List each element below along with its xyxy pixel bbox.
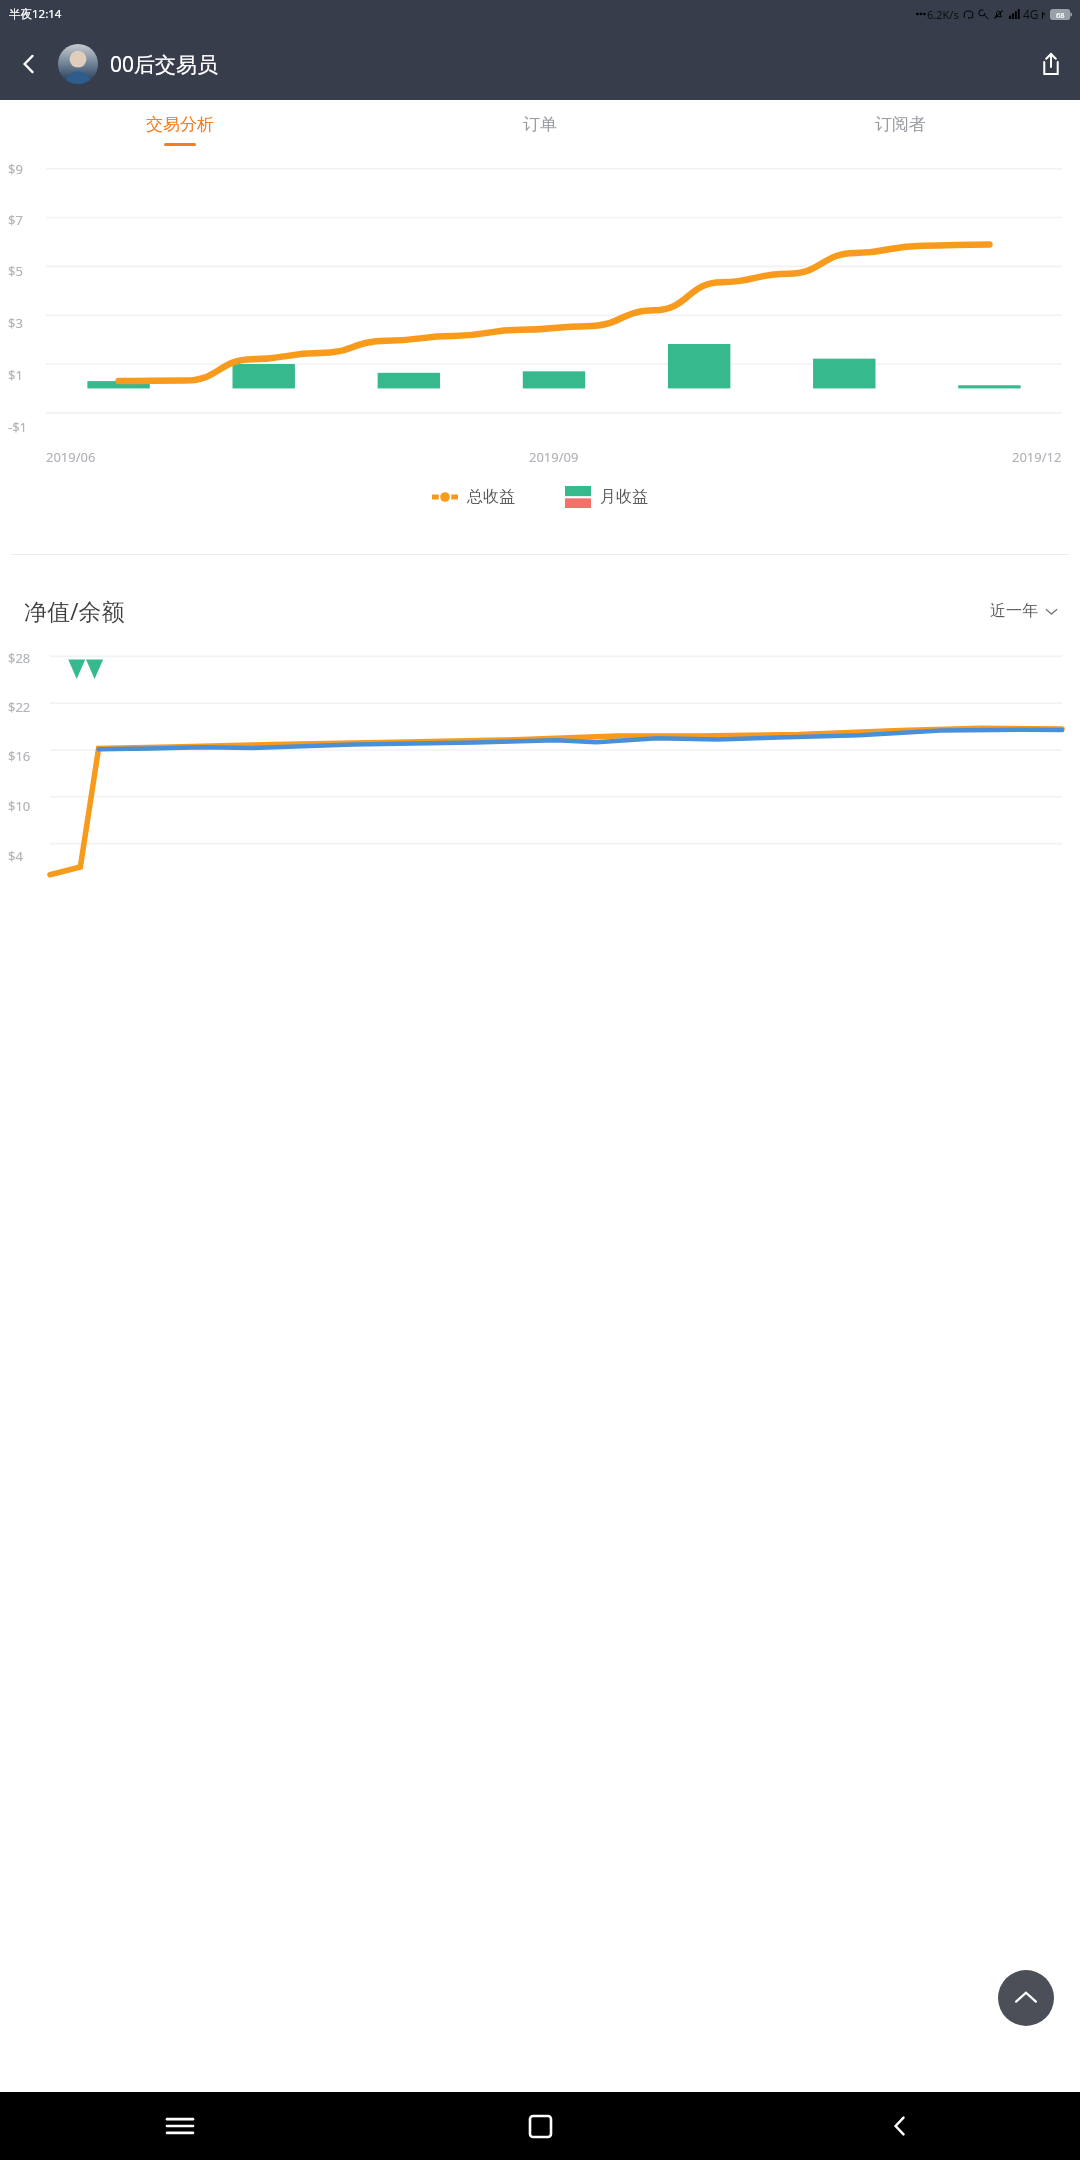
- button[interactable]: 近一年: [990, 601, 1058, 621]
- staticText: $22: [8, 698, 31, 716]
- staticText: 2019/06: [46, 448, 96, 466]
- button[interactable]: 订阅者: [720, 100, 1080, 158]
- staticText: $1: [8, 366, 23, 384]
- button[interactable]: Back: [0, 28, 58, 100]
- staticText: 订阅者: [875, 114, 926, 135]
- staticText: 2019/12: [1012, 448, 1062, 466]
- button[interactable]: 订单: [360, 100, 720, 158]
- button[interactable]: Share: [1022, 28, 1080, 100]
- staticText: 6.2K/s: [927, 7, 959, 22]
- staticText: $28: [8, 649, 31, 667]
- button[interactable]: Home: [360, 2092, 720, 2160]
- staticText: 00后交易员: [110, 50, 219, 79]
- staticText: 4G: [1023, 6, 1039, 22]
- staticText: 68: [1056, 10, 1065, 20]
- staticText: -$1: [8, 418, 28, 436]
- staticText: 净值/余额: [24, 595, 125, 626]
- staticText: $5: [8, 262, 23, 280]
- staticText: $4: [8, 847, 23, 865]
- staticText: 交易分析: [146, 114, 214, 135]
- staticText: $9: [8, 160, 23, 178]
- staticText: $7: [8, 211, 23, 229]
- button[interactable]: Back: [720, 2092, 1080, 2160]
- staticText: 近一年: [990, 601, 1038, 621]
- staticText: 月收益: [600, 487, 648, 507]
- staticText: 总收益: [467, 487, 515, 507]
- button[interactable]: Scroll to top: [998, 1970, 1054, 2026]
- button[interactable]: Recents: [0, 2092, 360, 2160]
- staticText: 订单: [523, 114, 557, 135]
- staticText: $16: [8, 747, 31, 765]
- staticText: 2019/09: [529, 448, 579, 466]
- button[interactable]: 交易分析: [0, 100, 360, 158]
- staticText: $3: [8, 314, 23, 332]
- staticText: 半夜12:14: [9, 6, 62, 22]
- staticText: $10: [8, 797, 31, 815]
